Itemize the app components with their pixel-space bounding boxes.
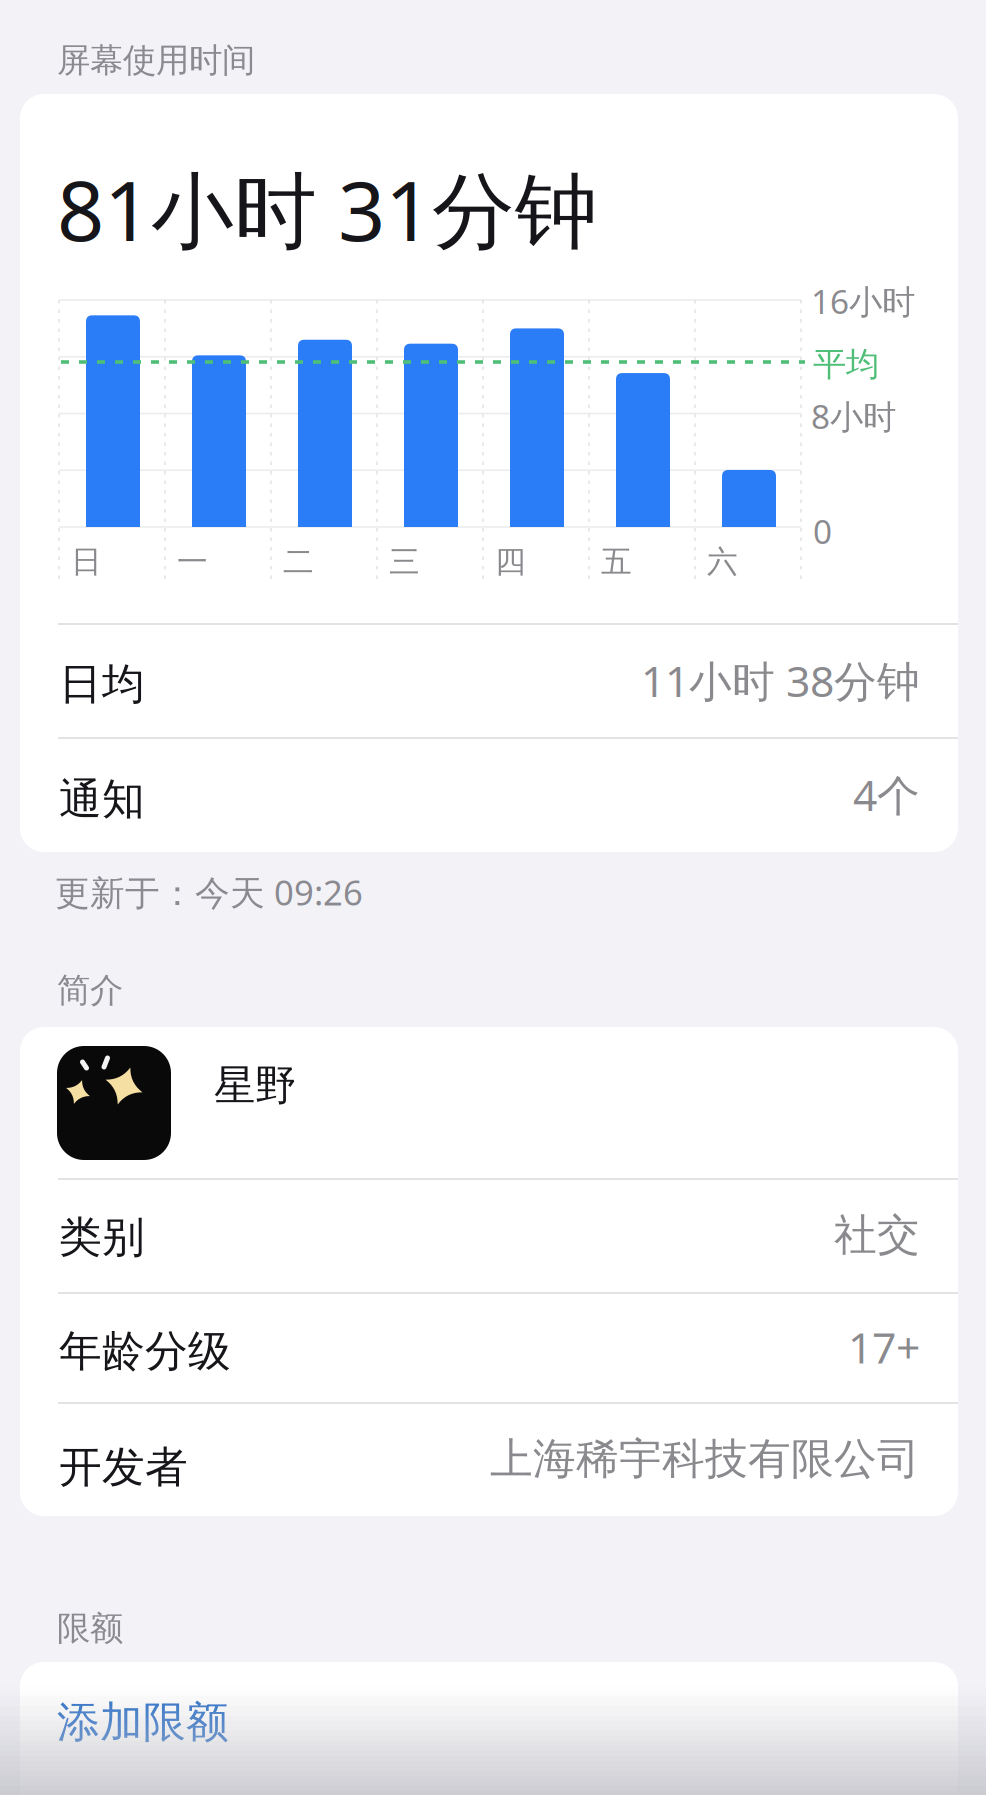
staticText: 类别 — [59, 1211, 145, 1263]
staticText: 六 — [707, 543, 738, 581]
button[interactable]: 类别 — [20, 1178, 958, 1292]
staticText: 上海稀宇科技有限公司 — [490, 1433, 920, 1485]
button[interactable]: 日均 — [20, 624, 958, 737]
staticText: 开发者 — [59, 1441, 188, 1493]
staticText: 17+ — [848, 1319, 920, 1375]
staticText: 日 — [71, 543, 102, 581]
staticText: 8小时 — [811, 394, 896, 438]
staticText: 限额 — [57, 1608, 123, 1649]
staticText: 屏幕使用时间 — [57, 40, 255, 81]
staticText: 四 — [495, 543, 526, 581]
staticText: 五 — [601, 543, 632, 581]
staticText: 更新于：今天 09:26 — [55, 869, 363, 915]
staticText: 社交 — [834, 1209, 920, 1261]
button[interactable]: 添加限额 — [20, 1662, 958, 1795]
staticText: 81小时 31分钟 — [57, 154, 598, 264]
staticText: 4个 — [853, 766, 920, 823]
staticText: 0 — [813, 509, 832, 553]
staticText: 16小时 — [811, 279, 915, 323]
staticText: 通知 — [59, 773, 145, 825]
staticText: 二 — [283, 543, 314, 581]
button[interactable]: 通知 — [20, 737, 958, 852]
staticText: 11小时 38分钟 — [641, 652, 920, 709]
button[interactable]: 开发者 — [20, 1402, 958, 1516]
staticText: 一 — [177, 543, 208, 581]
staticText: 平均 — [813, 344, 879, 385]
button[interactable]: 星野 — [20, 1027, 958, 1178]
staticText: 简介 — [57, 970, 123, 1011]
staticText: 添加限额 — [57, 1696, 229, 1748]
staticText: 星野 — [214, 1060, 296, 1111]
staticText: 日均 — [59, 658, 145, 710]
staticText: 年龄分级 — [59, 1325, 231, 1377]
button[interactable]: 年龄分级 — [20, 1292, 958, 1402]
staticText: 三 — [389, 543, 420, 581]
